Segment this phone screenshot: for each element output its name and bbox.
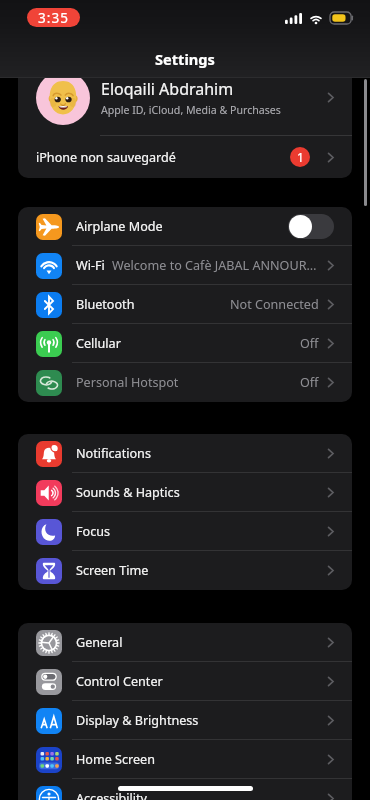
staticText: Not Connected xyxy=(230,296,319,313)
staticText: iPhone non sauvegardé xyxy=(36,149,176,166)
staticText: Wi-Fi xyxy=(76,257,105,274)
button[interactable]: iPhone non sauvegardé xyxy=(18,136,352,178)
staticText: Off xyxy=(300,374,319,391)
button[interactable]: Focus xyxy=(18,512,352,551)
staticText: Apple ID, iCloud, Media & Purchases xyxy=(101,103,281,117)
button[interactable]: Cellular xyxy=(18,324,352,363)
staticText: Eloqaili Abdrahim xyxy=(101,78,234,100)
button[interactable]: Notifications xyxy=(18,434,352,473)
button[interactable]: Bluetooth xyxy=(18,285,352,324)
staticText: Personal Hotspot xyxy=(76,374,179,391)
staticText: Screen Time xyxy=(76,562,149,579)
staticText: Notifications xyxy=(76,445,151,462)
button[interactable]: Eloqaili Abdrahim xyxy=(18,60,352,135)
staticText: Welcome to Cafè JABAL ANNOUR… xyxy=(112,257,317,274)
staticText: Focus xyxy=(76,523,111,540)
button[interactable]: Screen Time xyxy=(18,551,352,590)
button[interactable]: Wi-Fi xyxy=(18,246,352,285)
staticText: Home Screen xyxy=(76,751,156,768)
staticText: Display & Brightness xyxy=(76,712,199,729)
staticText: Sounds & Haptics xyxy=(76,484,180,501)
button[interactable]: Personal Hotspot xyxy=(18,363,352,402)
staticText: Airplane Mode xyxy=(76,218,163,235)
staticText: General xyxy=(76,634,123,651)
staticText: Settings xyxy=(155,49,215,69)
staticText: Control Center xyxy=(76,673,163,690)
button[interactable]: Home Screen xyxy=(18,740,352,779)
button[interactable]: Sounds & Haptics xyxy=(18,473,352,512)
button[interactable]: Control Center xyxy=(18,662,352,701)
button[interactable]: Display & Brightness xyxy=(18,701,352,740)
staticText: Cellular xyxy=(76,335,121,352)
staticText: Off xyxy=(300,335,319,352)
button[interactable]: Airplane Mode toggle xyxy=(288,214,334,239)
button[interactable]: Accessibility xyxy=(18,779,352,800)
staticText: Accessibility xyxy=(76,790,148,800)
button[interactable]: Airplane Mode xyxy=(18,207,352,246)
staticText: 3:35 xyxy=(38,9,70,27)
staticText: 1 xyxy=(297,149,304,165)
button[interactable]: General xyxy=(18,623,352,662)
staticText: Bluetooth xyxy=(76,296,135,313)
